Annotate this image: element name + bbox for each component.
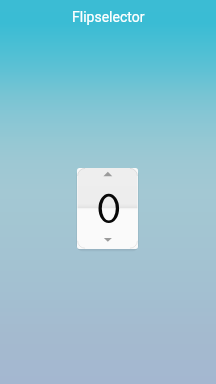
button[interactable]: Increase value — [77, 168, 138, 208]
button[interactable]: Decrease value — [77, 208, 138, 249]
staticText: Flipselector — [72, 9, 145, 25]
